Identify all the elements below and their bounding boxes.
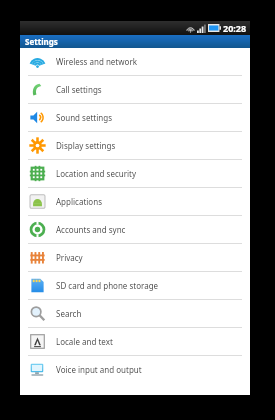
button[interactable]: Location and security <box>20 160 250 187</box>
staticText: Voice input and output <box>56 364 142 375</box>
staticText: Display settings <box>56 140 116 151</box>
staticText: Privacy <box>56 252 83 263</box>
staticText: Wireless and network <box>56 56 137 67</box>
staticText: Call settings <box>56 84 102 95</box>
staticText: Applications <box>56 196 102 207</box>
button[interactable]: Call settings <box>20 76 250 103</box>
button[interactable]: SD card and phone storage <box>20 272 250 299</box>
staticText: Location and security <box>56 168 137 179</box>
staticText: 20:28 <box>223 22 247 34</box>
button[interactable]: Wireless and network <box>20 48 250 75</box>
button[interactable]: Locale and text <box>20 328 250 355</box>
button[interactable]: Privacy <box>20 244 250 271</box>
staticText: Search <box>56 308 82 319</box>
button[interactable]: Voice input and output <box>20 356 250 383</box>
staticText: Locale and text <box>56 336 113 347</box>
staticText: Accounts and sync <box>56 224 126 235</box>
button[interactable]: Sound settings <box>20 104 250 131</box>
staticText: SD card and phone storage <box>56 280 159 291</box>
button[interactable]: Search <box>20 300 250 327</box>
button[interactable]: Applications <box>20 188 250 215</box>
staticText: Sound settings <box>56 112 112 123</box>
button[interactable]: Display settings <box>20 132 250 159</box>
button[interactable]: Accounts and sync <box>20 216 250 243</box>
staticText: Settings <box>25 36 58 47</box>
